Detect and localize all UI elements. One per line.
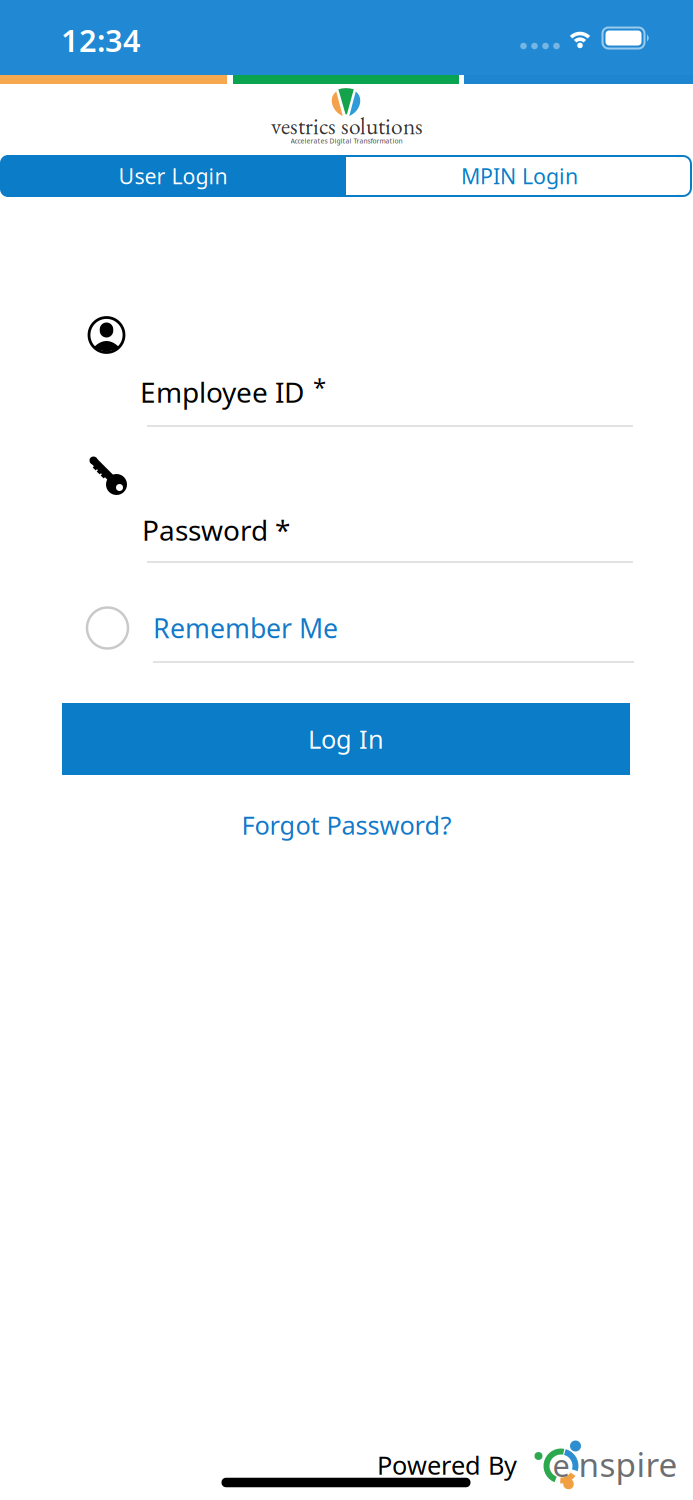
staticText: Employee ID (140, 373, 304, 411)
button[interactable]: Log In (62, 703, 630, 775)
staticText: Forgot Password? (241, 808, 451, 842)
staticText: nspire (578, 1442, 677, 1486)
staticText: 12:34 (61, 20, 141, 60)
button[interactable]: MPIN Login (346, 155, 693, 197)
button[interactable]: Forgot Password? (241, 808, 451, 842)
button[interactable]: User Login (0, 155, 346, 197)
staticText: * (313, 371, 326, 403)
button[interactable]: Remember Me (0, 607, 693, 648)
staticText: User Login (118, 162, 227, 190)
staticText: Password * (142, 511, 290, 549)
staticText: Powered By (377, 1448, 517, 1482)
staticText: Log In (308, 722, 384, 756)
staticText: vestrics solutions (271, 111, 423, 141)
staticText: e (552, 1445, 569, 1485)
staticText: Accelerates Digital Transformation (290, 137, 402, 145)
staticText: Remember Me (153, 610, 338, 646)
staticText: MPIN Login (461, 162, 578, 190)
